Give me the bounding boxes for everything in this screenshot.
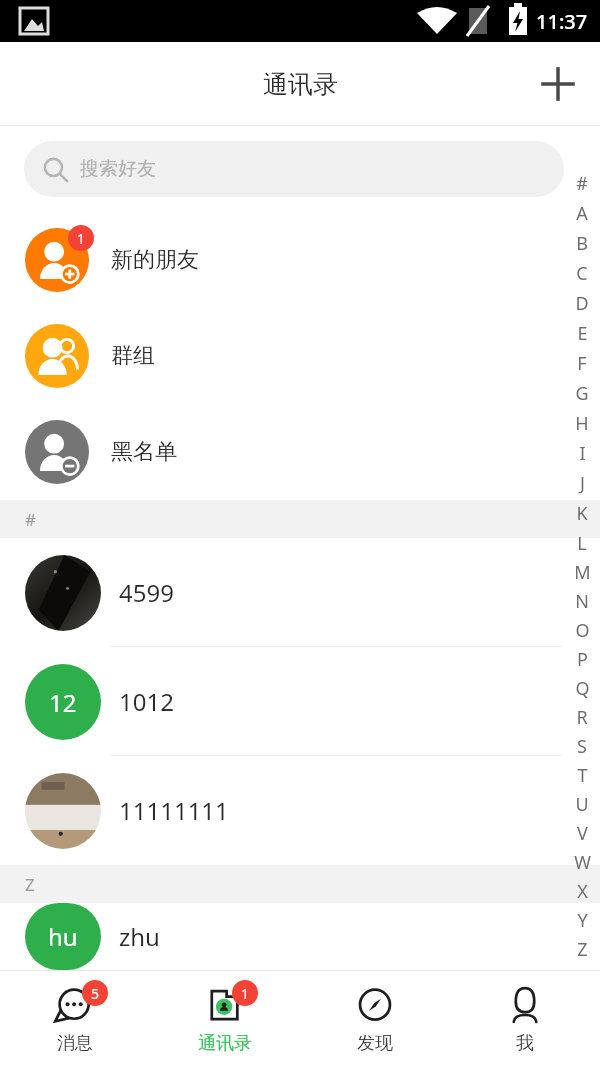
staticText: C [576, 261, 588, 286]
staticText: # [576, 171, 588, 196]
staticText: 黑名单 [111, 438, 177, 466]
button[interactable]: 发现 [300, 971, 450, 1067]
staticText: D [575, 291, 589, 316]
button[interactable]: 群组 [0, 308, 600, 404]
button[interactable]: E [564, 318, 600, 348]
staticText: I [579, 441, 586, 466]
button[interactable]: R [564, 703, 600, 732]
button[interactable]: D [564, 288, 600, 318]
button[interactable]: T [564, 761, 600, 790]
button[interactable]: O [564, 616, 600, 645]
staticText: V [577, 821, 588, 846]
staticText: 消息 [57, 1032, 93, 1055]
staticText: X [577, 879, 588, 904]
staticText: 4599 [119, 576, 174, 609]
staticText: M [574, 560, 591, 585]
staticText: L [577, 531, 587, 556]
staticText: 1 [77, 229, 86, 248]
staticText: Q [575, 676, 590, 701]
staticText: Z [577, 937, 588, 962]
staticText: 搜索好友 [80, 157, 156, 181]
button[interactable]: L [564, 528, 600, 558]
staticText: 群组 [111, 342, 155, 370]
button[interactable]: G [564, 378, 600, 408]
button[interactable]: hu [0, 903, 600, 970]
staticText: R [576, 705, 588, 730]
button[interactable]: J [564, 468, 600, 498]
button[interactable]: 11111111 [0, 756, 600, 865]
button[interactable]: A [564, 198, 600, 228]
staticText: 新的朋友 [111, 246, 199, 274]
button[interactable]: H [564, 408, 600, 438]
button[interactable]: P [564, 645, 600, 674]
staticText: K [576, 501, 588, 526]
staticText: B [576, 231, 588, 256]
staticText: 发现 [357, 1032, 393, 1055]
staticText: T [577, 763, 588, 788]
button[interactable]: Y [564, 906, 600, 935]
staticText: Y [577, 908, 588, 933]
staticText: 12 [49, 686, 77, 719]
button[interactable]: F [564, 348, 600, 378]
staticText: S [577, 734, 587, 759]
button[interactable]: 黑名单 [0, 404, 600, 500]
staticText: 通讯录 [198, 1032, 252, 1055]
button[interactable]: C [564, 258, 600, 288]
button[interactable]: X [564, 877, 600, 906]
button[interactable]: B [564, 228, 600, 258]
button[interactable]: S [564, 732, 600, 761]
button[interactable]: 12 [0, 647, 600, 756]
button[interactable]: Q [564, 674, 600, 703]
button[interactable]: N [564, 587, 600, 616]
button[interactable]: 我 [450, 971, 600, 1067]
staticText: Z [25, 873, 35, 896]
button[interactable]: V [564, 819, 600, 848]
staticText: G [575, 381, 589, 406]
button[interactable]: W [564, 848, 600, 877]
button[interactable]: M [564, 558, 600, 587]
staticText: 我 [516, 1032, 534, 1055]
staticText: O [575, 618, 590, 643]
button[interactable]: 1 [150, 971, 300, 1067]
staticText: P [577, 647, 588, 672]
button[interactable]: I [564, 438, 600, 468]
button[interactable]: 搜索好友 [24, 141, 564, 197]
staticText: F [577, 351, 587, 376]
staticText: 11:37 [536, 8, 588, 35]
button[interactable]: Add [530, 56, 586, 112]
button[interactable]: Z [564, 935, 600, 964]
button[interactable]: 1 [0, 212, 600, 308]
staticText: zhu [119, 920, 160, 953]
staticText: 通讯录 [263, 69, 338, 100]
button[interactable]: 5 [0, 971, 150, 1067]
staticText: 1 [241, 984, 250, 1003]
staticText: A [576, 201, 588, 226]
staticText: H [575, 411, 589, 436]
staticText: # [25, 508, 36, 531]
staticText: U [575, 792, 589, 817]
staticText: J [580, 471, 585, 496]
button[interactable]: 4599 [0, 538, 600, 647]
staticText: 11111111 [119, 794, 229, 827]
staticText: N [575, 589, 589, 614]
button[interactable]: # [564, 168, 600, 198]
button[interactable]: K [564, 498, 600, 528]
staticText: 5 [91, 984, 100, 1003]
staticText: hu [48, 920, 78, 953]
button[interactable]: U [564, 790, 600, 819]
staticText: W [574, 850, 591, 875]
staticText: 1012 [119, 685, 174, 718]
staticText: E [577, 321, 588, 346]
